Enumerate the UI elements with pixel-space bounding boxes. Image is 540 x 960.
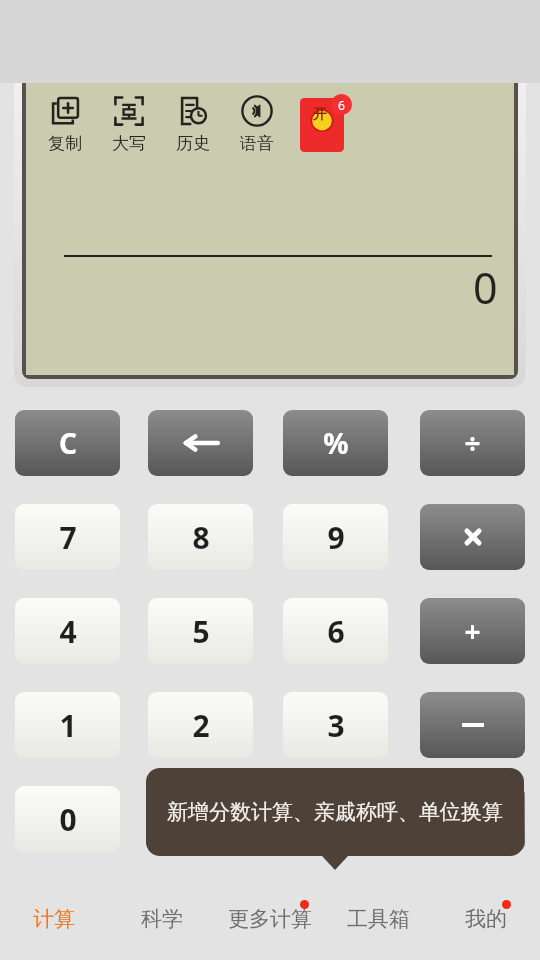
staticText: 4	[59, 611, 77, 652]
staticText: 1	[59, 705, 77, 746]
staticText: 0	[59, 799, 77, 840]
button[interactable]: 3	[283, 692, 388, 758]
staticText: 历史	[176, 133, 210, 154]
button[interactable]: 更多计算	[216, 877, 324, 960]
button[interactable]: %	[283, 410, 388, 476]
button[interactable]: 9	[283, 504, 388, 570]
staticText: 计算	[33, 906, 75, 932]
button[interactable]: C	[15, 410, 120, 476]
button[interactable]	[420, 504, 525, 570]
staticText: +	[464, 612, 481, 650]
button[interactable]: 4	[15, 598, 120, 664]
staticText: %	[323, 424, 349, 462]
staticText: 8	[192, 517, 210, 558]
staticText: 大写	[112, 133, 146, 154]
staticText: =	[327, 799, 345, 840]
staticText: 7	[59, 517, 77, 558]
button[interactable]	[148, 410, 253, 476]
button[interactable]: 8	[148, 504, 253, 570]
button[interactable]: 大写	[112, 94, 146, 154]
button[interactable]: 科学	[108, 877, 216, 960]
staticText: ÷	[464, 424, 481, 462]
button[interactable]: 计算	[0, 877, 108, 960]
staticText: +	[464, 800, 481, 838]
button[interactable]: 红包	[300, 94, 352, 152]
staticText: 科学	[141, 906, 183, 932]
staticText: 语音	[240, 133, 274, 154]
button[interactable]: 新增分数计算、亲戚称呼、单位换算	[146, 768, 524, 856]
staticText: 复制	[48, 133, 82, 154]
button[interactable]: 复制	[48, 94, 82, 154]
staticText: 开	[313, 106, 327, 124]
staticText: 9	[327, 517, 345, 558]
staticText: 0	[473, 258, 498, 317]
staticText: .	[196, 799, 205, 840]
staticText: C	[59, 424, 77, 462]
button[interactable]: ÷	[420, 410, 525, 476]
staticText: 6	[327, 611, 345, 652]
button[interactable]: 我的	[432, 877, 540, 960]
button[interactable]: 工具箱	[324, 877, 432, 960]
button[interactable]: 0	[15, 786, 120, 852]
button[interactable]: 语音	[240, 94, 274, 154]
button[interactable]: =	[283, 786, 388, 852]
button[interactable]: 历史	[176, 94, 210, 154]
button[interactable]: 5	[148, 598, 253, 664]
staticText: 工具箱	[347, 906, 410, 932]
button[interactable]: 2	[148, 692, 253, 758]
button[interactable]: +	[420, 786, 525, 852]
staticText: 2	[192, 705, 210, 746]
staticText: 6	[338, 97, 345, 113]
staticText: 3	[327, 705, 345, 746]
button[interactable]: 1	[15, 692, 120, 758]
button[interactable]: 6	[283, 598, 388, 664]
button[interactable]: +	[420, 598, 525, 664]
staticText: 5	[192, 611, 210, 652]
staticText: 更多计算	[228, 906, 312, 932]
staticText: 我的	[465, 906, 507, 932]
button[interactable]: .	[148, 786, 253, 852]
button[interactable]: 7	[15, 504, 120, 570]
staticText: 新增分数计算、亲戚称呼、单位换算	[167, 799, 503, 825]
button[interactable]	[420, 692, 525, 758]
